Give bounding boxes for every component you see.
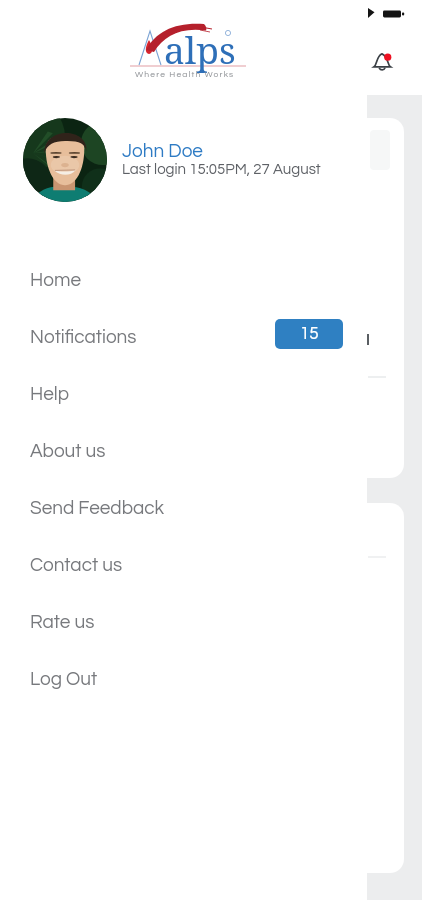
staticText: Where Health Works [135,70,235,79]
staticText: 15 [300,325,319,343]
staticText: Help [30,384,70,404]
button[interactable]: Log Out [0,650,367,707]
button[interactable]: Notifications [0,308,367,365]
button[interactable]: Home [0,251,367,308]
staticText: Home [30,270,82,290]
staticText: Rate us [30,612,95,632]
staticText: alps [164,24,236,74]
staticText: Contact us [30,555,123,575]
staticText: Log Out [30,669,98,689]
button[interactable]: About us [0,422,367,479]
staticText: Last login 15:05PM, 27 August [122,162,321,177]
button[interactable]: Send Feedback [0,479,367,536]
button[interactable]: Help [0,365,367,422]
staticText: John Doe [122,141,203,161]
button[interactable]: Contact us [0,536,367,593]
staticText: Notifications [30,327,137,347]
button[interactable]: Rate us [0,593,367,650]
staticText: About us [30,441,106,461]
button[interactable]: Notifications [370,50,394,74]
staticText: Send Feedback [30,498,165,518]
